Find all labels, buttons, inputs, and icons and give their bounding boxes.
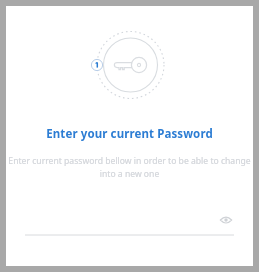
button[interactable]: Show password: [25, 206, 234, 240]
staticText: Enter your current Password: [46, 126, 213, 142]
staticText: Enter current password bellow in order t…: [8, 155, 251, 180]
button[interactable]: Show password: [218, 212, 234, 228]
